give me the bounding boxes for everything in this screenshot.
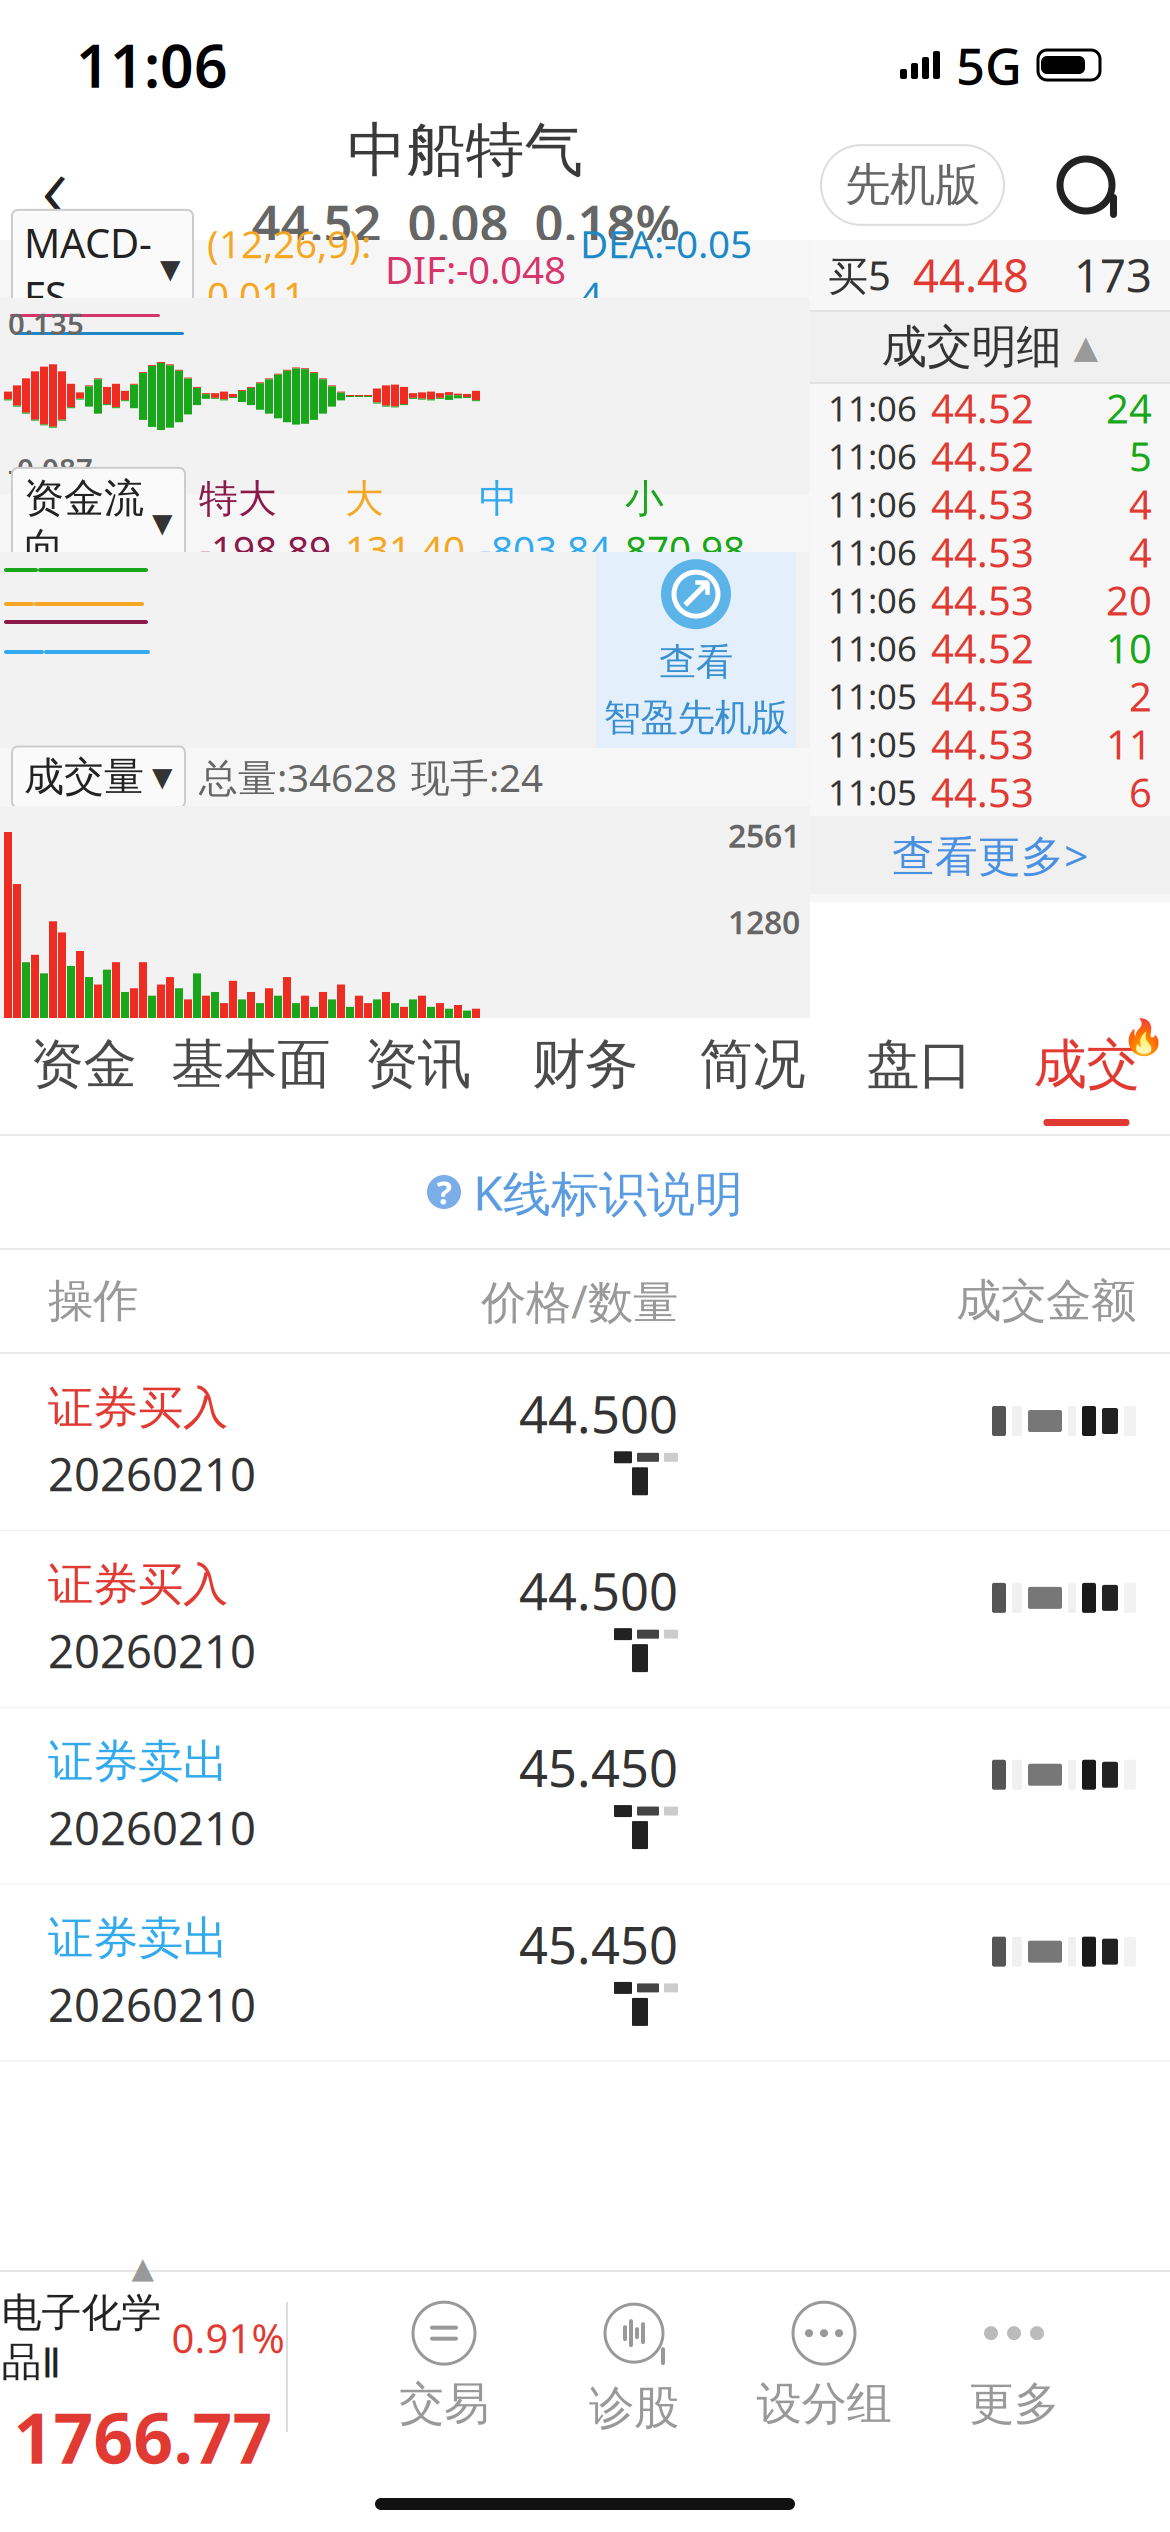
- button[interactable]: 返回: [0, 130, 110, 240]
- staticText: 44.53: [931, 477, 1034, 530]
- staticText: ↗: [677, 568, 715, 620]
- button[interactable]: 先机版: [821, 145, 1004, 225]
- button[interactable]: 查看更多>: [810, 816, 1170, 894]
- staticText: ‹: [41, 118, 68, 252]
- staticText: -0.087: [8, 449, 93, 488]
- staticText: 11:05: [828, 769, 917, 815]
- staticText: 5: [1129, 429, 1152, 482]
- staticText: 资金流向: [24, 474, 144, 572]
- button[interactable]: 盘口: [836, 1018, 1003, 1134]
- button[interactable]: ↗: [596, 552, 796, 748]
- button[interactable]: 资金: [0, 1018, 167, 1134]
- staticText: 中船特气: [347, 114, 583, 186]
- staticText: 成交量: [24, 752, 144, 801]
- button[interactable]: 证券卖出: [0, 1885, 1170, 2061]
- staticText: 成交: [1033, 1032, 1139, 1097]
- staticText: 44.52: [931, 429, 1034, 482]
- staticText: 查看更多>: [892, 827, 1088, 883]
- staticText: 44.48: [913, 245, 1029, 305]
- staticText: 1766.77: [13, 2391, 272, 2483]
- staticText: 特大 -198.89: [199, 472, 331, 574]
- staticText: 诊股: [589, 2380, 679, 2436]
- staticText: 44.53: [931, 765, 1034, 818]
- staticText: 4: [1129, 525, 1152, 578]
- button[interactable]: 财务: [501, 1018, 668, 1134]
- staticText: 财务: [532, 1032, 638, 1097]
- button[interactable]: 简况: [669, 1018, 836, 1134]
- staticText: 20260210: [48, 1797, 256, 1858]
- staticText: 证券买入: [48, 1380, 228, 1436]
- staticText: 11:05: [828, 721, 917, 767]
- staticText: 现手:24: [411, 751, 543, 803]
- button[interactable]: 证券买入: [0, 1531, 1170, 1708]
- staticText: 44.52: [931, 621, 1034, 674]
- staticText: 4: [1129, 477, 1152, 530]
- staticText: ▼: [152, 762, 173, 792]
- staticText: 交易: [399, 2376, 489, 2432]
- staticText: ▲: [1073, 329, 1098, 365]
- staticText: 价格/数量: [481, 1271, 678, 1331]
- staticText: 44.500: [519, 1557, 678, 1624]
- staticText: 44.52 0.08 0.18%: [251, 188, 679, 256]
- button[interactable]: 更多: [919, 2277, 1109, 2457]
- staticText: 基本面: [171, 1032, 330, 1097]
- button[interactable]: 证券买入: [0, 1354, 1170, 1531]
- button[interactable]: ▲: [0, 2251, 286, 2483]
- staticText: 44.53: [931, 573, 1034, 626]
- staticText: 更多: [969, 2376, 1059, 2432]
- staticText: 20: [1106, 573, 1152, 626]
- staticText: 11:06: [76, 26, 228, 104]
- staticText: 45.450: [519, 1734, 678, 1801]
- staticText: 设分组: [756, 2376, 891, 2432]
- staticText: 盘口: [866, 1032, 972, 1097]
- staticText: 11:05: [828, 673, 917, 719]
- staticText: 5G: [956, 31, 1022, 99]
- staticText: 查看: [659, 639, 733, 685]
- staticText: 成交金额: [956, 1273, 1136, 1329]
- button[interactable]: 诊股: [539, 2277, 729, 2457]
- staticText: DEA:-0.054: [580, 218, 752, 320]
- staticText: 11: [1106, 717, 1152, 770]
- staticText: ▼: [152, 508, 173, 538]
- button[interactable]: 资讯: [334, 1018, 501, 1134]
- staticText: 10: [1106, 621, 1152, 674]
- staticText: 2: [1129, 669, 1152, 722]
- staticText: ▲: [131, 2251, 154, 2284]
- button[interactable]: 基本面: [167, 1018, 334, 1134]
- button[interactable]: 成交明细: [810, 312, 1170, 382]
- staticText: 0.135: [8, 304, 84, 343]
- staticText: 简况: [699, 1032, 805, 1097]
- staticText: (12,26,9):0.011: [207, 218, 371, 320]
- staticText: 0.91%: [171, 2311, 284, 2364]
- staticText: 20260210: [48, 1974, 256, 2034]
- staticText: 证券买入: [48, 1557, 228, 1613]
- button[interactable]: ?: [0, 1136, 1170, 1248]
- button[interactable]: 设分组: [729, 2277, 919, 2457]
- staticText: 173: [1074, 245, 1152, 305]
- staticText: 24: [1106, 381, 1152, 434]
- staticText: 11:06: [828, 529, 917, 575]
- button[interactable]: 成交量: [12, 746, 185, 807]
- staticText: 44.53: [931, 525, 1034, 578]
- staticText: DIF:-0.048: [385, 243, 566, 295]
- staticText: 44.53: [931, 669, 1034, 722]
- staticText: 证券卖出: [48, 1911, 228, 1966]
- staticText: 资讯: [365, 1032, 471, 1097]
- button[interactable]: 成交: [1003, 1018, 1170, 1134]
- button[interactable]: MACDFS: [12, 210, 193, 328]
- staticText: 11:06: [828, 433, 917, 479]
- staticText: 证券卖出: [48, 1734, 228, 1789]
- button[interactable]: 交易: [349, 2277, 539, 2457]
- staticText: 先机版: [845, 157, 980, 213]
- staticText: 11:06: [828, 577, 917, 623]
- staticText: 资金: [31, 1032, 137, 1097]
- staticText: 20260210: [48, 1621, 256, 1681]
- staticText: ?: [436, 1171, 451, 1213]
- button[interactable]: 证券卖出: [0, 1708, 1170, 1885]
- button[interactable]: 资金流向: [12, 468, 185, 578]
- staticText: 11:06: [828, 385, 917, 431]
- staticText: 🔥: [1122, 1018, 1165, 1057]
- button[interactable]: 搜索: [1038, 137, 1134, 233]
- staticText: 2561: [728, 814, 800, 856]
- staticText: 44.52: [931, 381, 1034, 434]
